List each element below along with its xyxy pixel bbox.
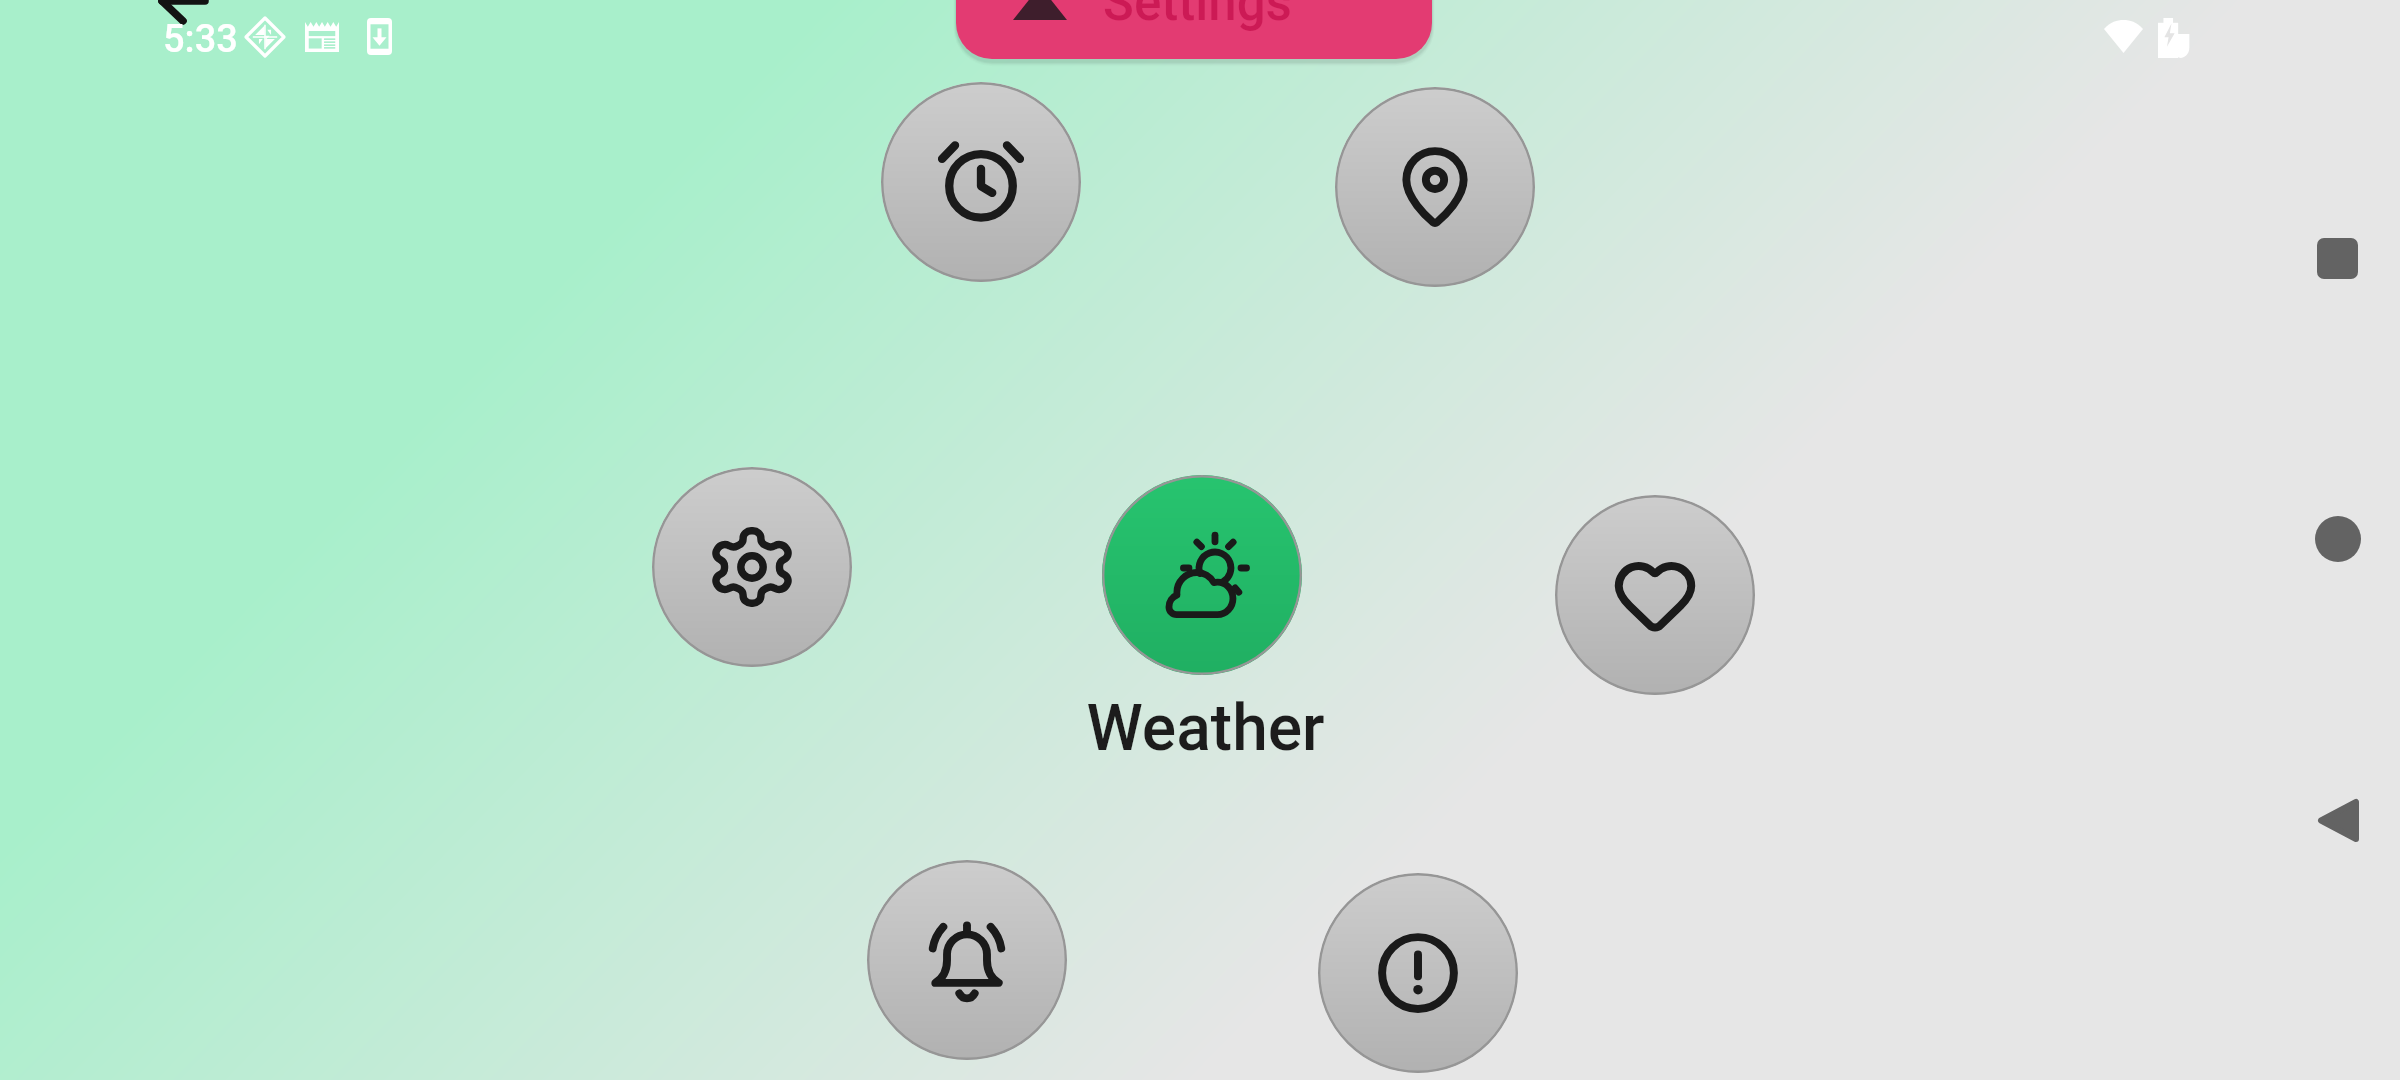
button[interactable]: Weather [1102, 475, 1302, 675]
button[interactable]: Notifications [867, 860, 1067, 1060]
button[interactable]: Recents [2297, 218, 2377, 298]
button[interactable]: Back [2298, 780, 2378, 860]
button[interactable]: Location [1335, 87, 1535, 287]
staticText: Settings [1103, 0, 1292, 33]
button[interactable]: Settings [652, 467, 852, 667]
button[interactable] [956, 0, 1432, 59]
staticText: 5:33 [163, 17, 238, 62]
staticText: Weather [1086, 691, 1325, 766]
button[interactable]: Home [2298, 499, 2378, 579]
button[interactable]: Alarm [881, 82, 1081, 282]
button[interactable]: Info [1318, 873, 1518, 1073]
button[interactable]: Favorites [1555, 495, 1755, 695]
